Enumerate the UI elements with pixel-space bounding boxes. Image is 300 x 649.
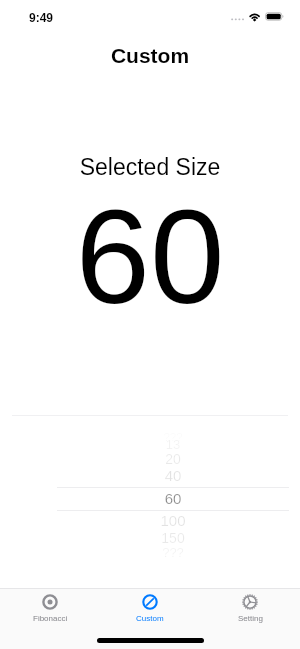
button[interactable]: Size picker wheel <box>0 416 300 588</box>
other: Setting <box>241 593 259 611</box>
staticText: 9:49 <box>29 11 54 24</box>
staticText: 60 <box>0 182 300 332</box>
staticText: 100 <box>73 512 273 529</box>
staticText: Selected Size <box>0 154 300 180</box>
staticText: Fibonacci <box>33 614 68 623</box>
staticText: Custom <box>0 44 300 67</box>
other: Custom <box>141 593 159 611</box>
staticText: Custom <box>136 614 164 623</box>
button[interactable]: Fibonacci <box>0 588 100 649</box>
button[interactable]: Setting <box>200 588 300 649</box>
staticText: 60 <box>73 490 273 507</box>
staticText: Setting <box>238 614 263 623</box>
other: Fibonacci <box>41 593 59 611</box>
button[interactable]: Custom <box>100 588 200 649</box>
